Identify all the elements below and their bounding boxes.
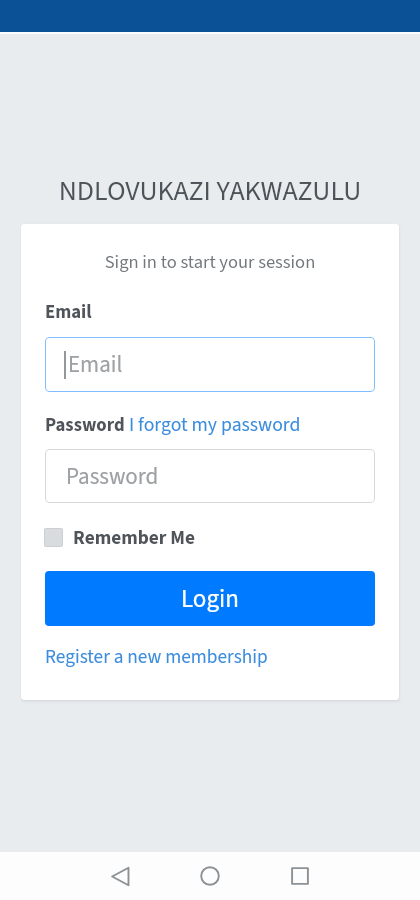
button[interactable]: Recent apps — [277, 853, 323, 899]
button[interactable]: Home — [187, 853, 233, 899]
staticText: Email — [45, 299, 92, 326]
button[interactable]: Login — [45, 571, 375, 626]
staticText: Remember Me — [73, 524, 195, 551]
button[interactable]: Back — [97, 853, 143, 899]
button[interactable]: Remember Me — [44, 524, 195, 551]
staticText: Sign in to start your session — [21, 249, 399, 275]
button[interactable]: Password — [45, 449, 375, 503]
staticText: Login — [181, 581, 239, 617]
staticText: Email — [68, 348, 123, 381]
button[interactable]: I forgot my password — [129, 411, 301, 439]
staticText: NDLOVUKAZI YAKWAZULU — [0, 171, 420, 211]
staticText: Password — [66, 460, 159, 493]
button[interactable]: Email — [45, 337, 375, 392]
button[interactable]: Register a new membership — [45, 643, 268, 670]
staticText: Password — [45, 412, 129, 439]
